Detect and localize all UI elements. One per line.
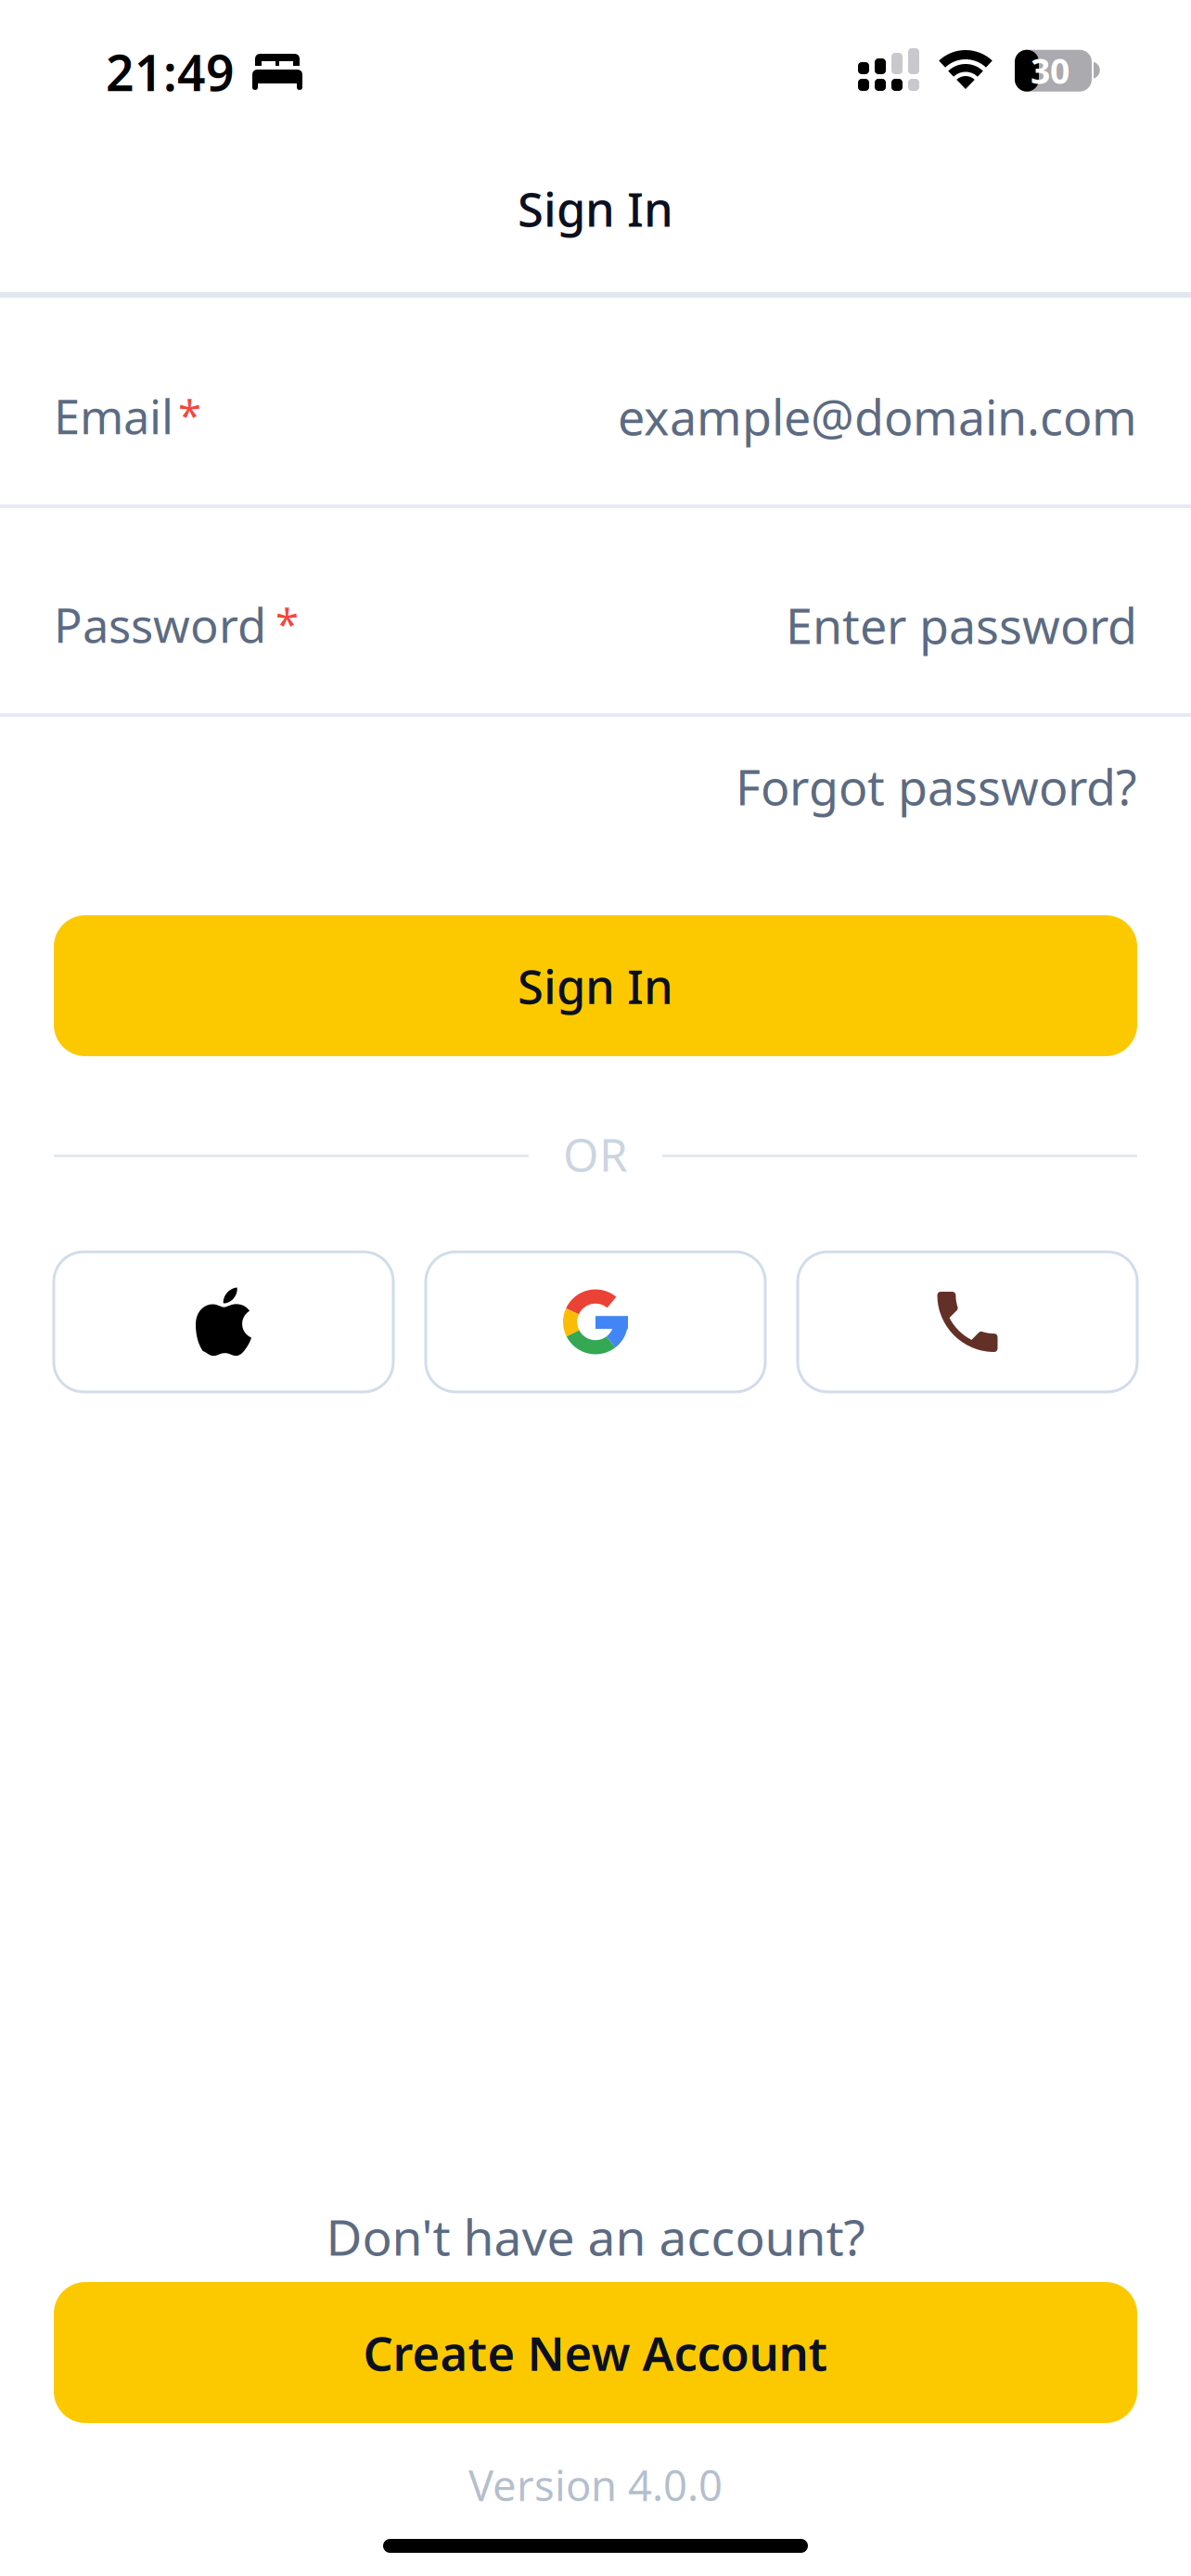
staticText: Enter password <box>786 593 1137 657</box>
staticText: 21:49 <box>106 39 235 105</box>
staticText: example@domain.com <box>618 385 1137 449</box>
staticText: Create New Account <box>363 2321 828 2384</box>
staticText: Password <box>54 593 266 656</box>
button[interactable]: Password <box>0 508 1191 713</box>
button[interactable]: Sign In <box>54 915 1137 1056</box>
staticText: Don't have an account? <box>326 2204 865 2269</box>
staticText: * <box>275 596 299 652</box>
staticText: Email <box>54 385 173 447</box>
button[interactable]: Sign in with phone number <box>798 1252 1137 1392</box>
staticText: 30 <box>1031 48 1069 94</box>
button[interactable]: Create New Account <box>54 2282 1137 2423</box>
staticText: Version 4.0.0 <box>468 2457 723 2513</box>
button[interactable]: Sign in with Google <box>426 1252 765 1392</box>
staticText: Forgot password? <box>736 755 1137 819</box>
button[interactable]: Email <box>0 298 1191 504</box>
staticText: OR <box>563 1123 628 1184</box>
staticText: Sign In <box>518 177 673 240</box>
staticText: Sign In <box>518 955 673 1017</box>
button[interactable]: Forgot password? <box>0 754 1137 819</box>
button[interactable]: Sign in with Apple <box>54 1252 393 1392</box>
staticText: * <box>178 387 201 443</box>
